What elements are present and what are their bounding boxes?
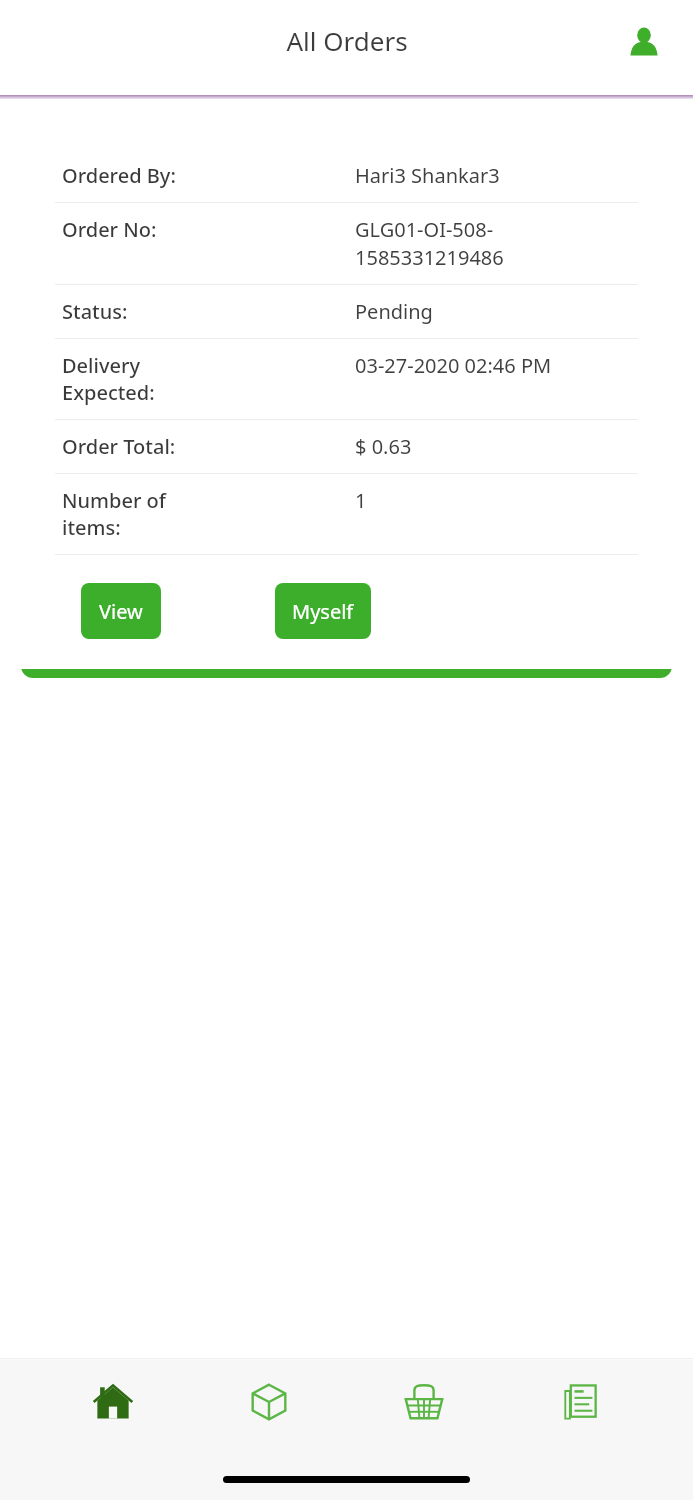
staticText: Hari3 Shankar3: [355, 162, 500, 189]
button[interactable]: Ordered By:: [21, 122, 672, 678]
staticText: Pending: [355, 298, 433, 325]
staticText: Status:: [62, 298, 207, 325]
staticText: 1: [355, 487, 367, 514]
staticText: Order No:: [62, 216, 207, 243]
staticText: 03-27-2020 02:46 PM: [355, 352, 552, 379]
staticText: Number of items:: [62, 487, 207, 541]
staticText: All Orders: [286, 23, 408, 58]
button[interactable]: Basket: [382, 1360, 466, 1444]
button[interactable]: View: [81, 583, 161, 639]
staticText: GLG01-OI-508- 1585331219486: [355, 216, 504, 271]
staticText: Ordered By:: [62, 162, 207, 189]
staticText: Order Total:: [62, 433, 207, 460]
button[interactable]: Orders: [538, 1360, 622, 1444]
button[interactable]: Products: [227, 1360, 311, 1444]
button[interactable]: Profile: [621, 18, 667, 64]
staticText: Myself: [292, 598, 354, 625]
button[interactable]: Home: [71, 1360, 155, 1444]
staticText: Delivery Expected:: [62, 352, 207, 406]
staticText: $ 0.63: [355, 433, 412, 460]
button[interactable]: Myself: [275, 583, 371, 639]
staticText: View: [99, 598, 143, 625]
